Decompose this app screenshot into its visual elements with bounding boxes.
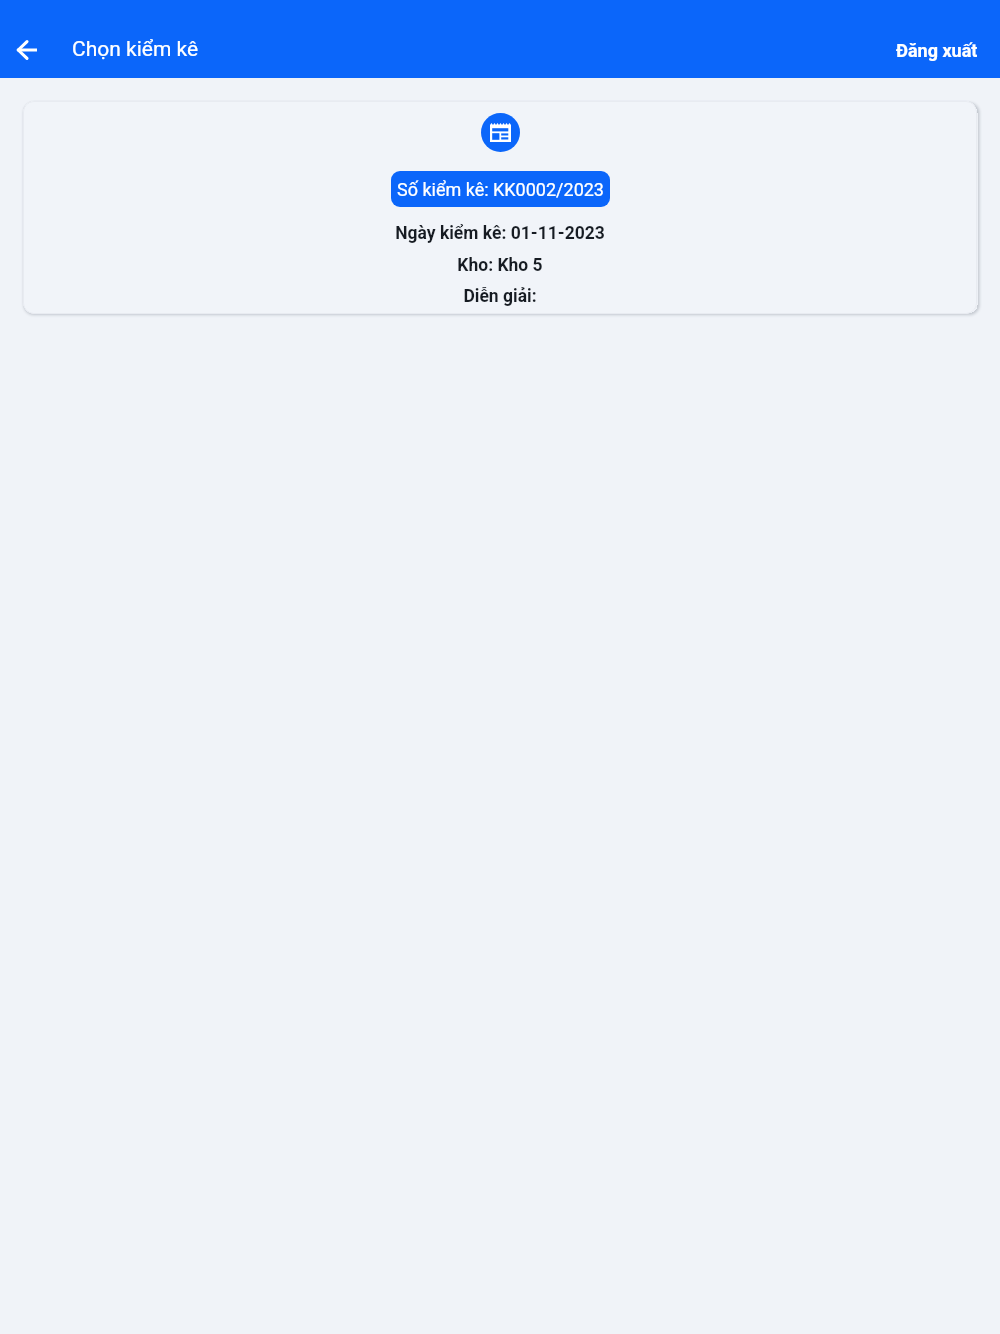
button[interactable]: Back <box>0 23 54 77</box>
staticText: Ngày kiểm kê: 01-11-2023 <box>395 223 605 244</box>
staticText: Diễn giải: <box>463 286 537 307</box>
button[interactable]: Số kiểm kê: KK0002/2023 <box>23 101 977 314</box>
button[interactable]: Đăng xuất <box>872 28 1000 73</box>
staticText: Chọn kiểm kê <box>72 37 199 62</box>
staticText: Kho: Kho 5 <box>457 255 543 276</box>
staticText: Số kiểm kê: KK0002/2023 <box>397 179 604 200</box>
staticText: Đăng xuất <box>896 40 978 61</box>
